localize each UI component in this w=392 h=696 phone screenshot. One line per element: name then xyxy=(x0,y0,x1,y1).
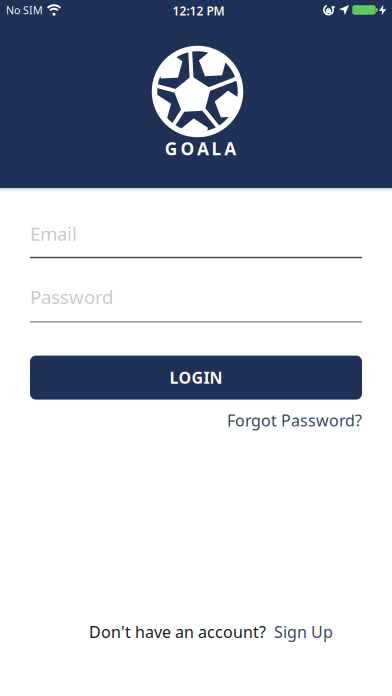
button[interactable]: Email xyxy=(30,221,362,258)
staticText: Password xyxy=(30,284,113,309)
staticText: 12:12 PM xyxy=(172,3,224,19)
button[interactable]: Sign Up xyxy=(274,621,333,642)
staticText: L xyxy=(212,137,222,160)
staticText: Sign Up xyxy=(274,621,333,642)
button[interactable]: Password xyxy=(30,284,362,323)
staticText: LOGIN xyxy=(169,367,222,388)
button[interactable]: Forgot Password? xyxy=(227,410,362,431)
staticText: No SIM xyxy=(6,3,43,17)
staticText: Email xyxy=(30,221,77,246)
staticText: Don't have an account? xyxy=(89,621,266,642)
staticText: A xyxy=(197,137,209,160)
button[interactable]: LOGIN xyxy=(30,356,362,400)
staticText: A xyxy=(224,137,236,160)
staticText: G xyxy=(165,137,178,160)
staticText: Forgot Password? xyxy=(227,410,362,431)
staticText: O xyxy=(180,137,194,160)
